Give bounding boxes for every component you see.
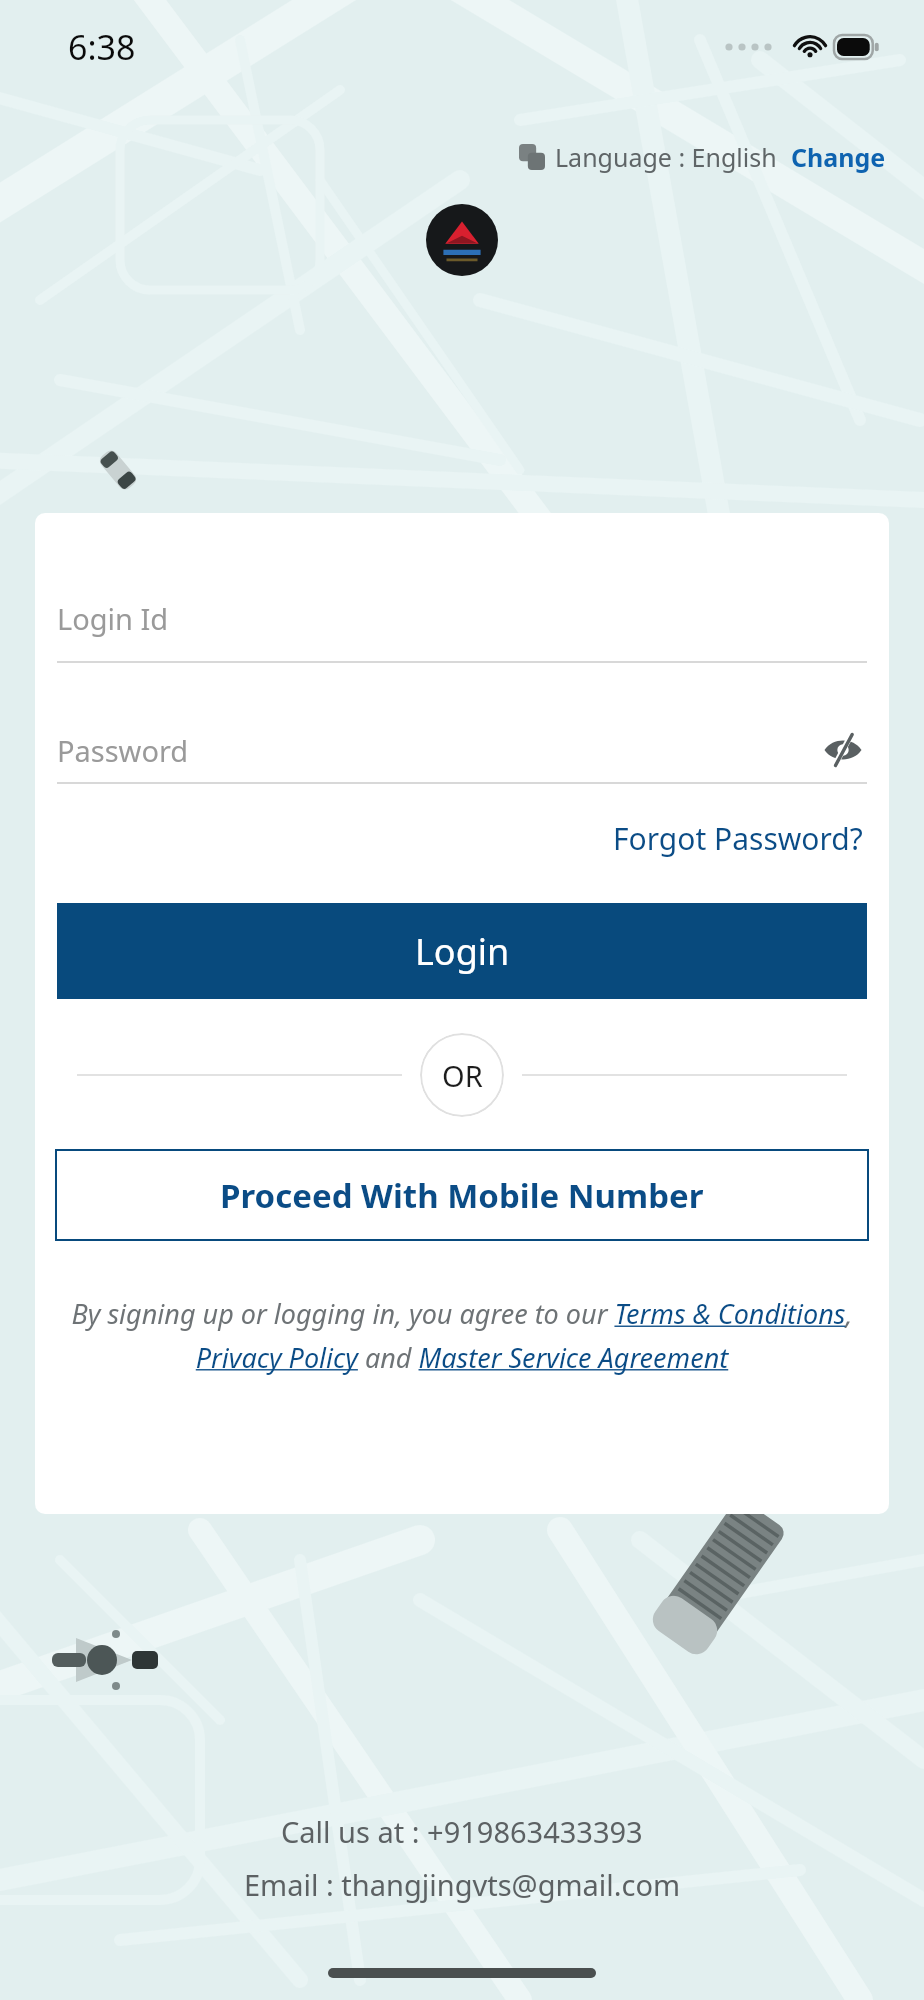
staticText: Email : thangjingvts@gmail.com [244,1865,681,1904]
button[interactable]: Proceed With Mobile Number [55,1149,869,1241]
staticText: OR [442,1056,483,1095]
button[interactable]: Password [57,726,867,784]
staticText: Login [415,927,510,976]
staticText: Password [57,731,819,770]
staticText: Forgot Password? [613,818,863,859]
staticText: Call us at : +919863433393 [281,1812,643,1851]
button[interactable]: Show password [819,726,867,774]
button[interactable]: Login [57,903,867,999]
staticText: By signing up or logging in, you agree t… [61,1295,863,1375]
staticText: Language : English [555,140,777,174]
staticText: Proceed With Mobile Number [220,1173,704,1218]
staticText: Change [791,140,886,174]
staticText: Login Id [57,599,169,638]
button[interactable]: Login Id [57,599,867,663]
button[interactable]: Language : English [519,140,886,174]
button[interactable]: By signing up or logging in, you agree t… [61,1295,863,1375]
button[interactable]: Forgot Password? [609,814,867,863]
staticText: 6:38 [68,24,136,70]
